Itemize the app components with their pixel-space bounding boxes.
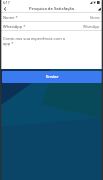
staticText: Pesquisa de Satisfação: [29, 6, 75, 12]
button[interactable]: Send: [94, 5, 103, 12]
staticText: WhatsApp: [83, 24, 100, 29]
button[interactable]: Nome *: [0, 13, 103, 21]
staticText: Conte-nos sua experiência com o app *: [3, 36, 66, 46]
staticText: Nome *: [3, 15, 18, 20]
button[interactable]: Conte-nos sua experiência com o app *: [0, 31, 103, 71]
button[interactable]: Back: [0, 5, 9, 12]
staticText: Nome: [90, 15, 100, 20]
button[interactable]: Enviar: [2, 71, 102, 83]
staticText: 6:17: [3, 0, 10, 5]
staticText: WhatsApp *: [3, 24, 26, 29]
staticText: Enviar: [46, 74, 59, 80]
button[interactable]: WhatsApp *: [0, 22, 103, 30]
